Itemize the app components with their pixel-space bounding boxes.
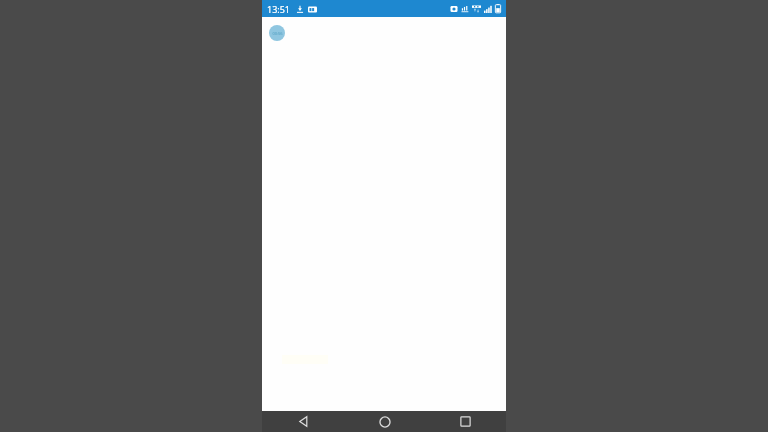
button[interactable]: 00:56 [269, 25, 285, 41]
button[interactable]: Back [262, 411, 344, 432]
button[interactable]: Recent apps [425, 411, 506, 432]
button[interactable]: Home [344, 411, 425, 432]
staticText: 13:51 [267, 3, 291, 15]
staticText: 00:56 [272, 31, 283, 36]
